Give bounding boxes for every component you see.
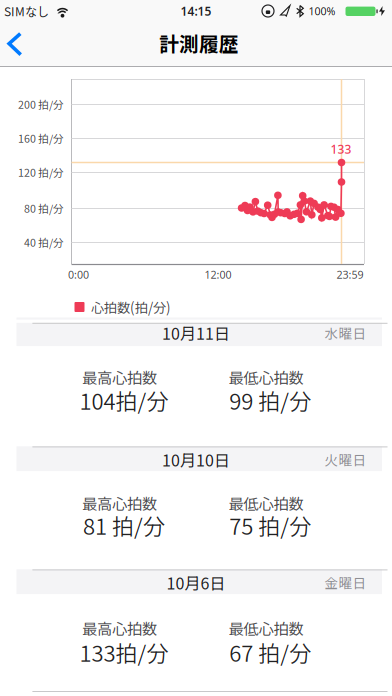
- staticText: 100%: [308, 4, 335, 18]
- staticText: 81 拍/分: [83, 509, 165, 541]
- staticText: 最低心拍数: [228, 617, 303, 639]
- staticText: 99 拍/分: [229, 384, 311, 416]
- button[interactable]: 最高心拍数: [0, 0, 392, 696]
- staticText: 133拍/分: [79, 636, 168, 668]
- staticText: 14:15: [180, 3, 211, 19]
- staticText: 最低心拍数: [228, 366, 303, 388]
- staticText: 23:59: [336, 267, 363, 282]
- staticText: 104拍/分: [79, 384, 168, 416]
- staticText: 金曜日: [324, 573, 366, 592]
- staticText: 水曜日: [324, 323, 366, 343]
- staticText: SIMなし: [4, 2, 49, 20]
- staticText: 最高心拍数: [82, 492, 157, 514]
- staticText: 計測履歴: [159, 29, 239, 57]
- staticText: 67 拍/分: [229, 636, 311, 668]
- staticText: 心拍数(拍/分): [91, 297, 171, 317]
- staticText: 最高心拍数: [82, 617, 157, 639]
- staticText: 最低心拍数: [228, 492, 303, 514]
- staticText: 10月11日: [162, 321, 230, 344]
- staticText: 40 拍/分: [24, 234, 64, 250]
- staticText: 160 拍/分: [18, 130, 64, 146]
- staticText: 10月6日: [166, 571, 225, 594]
- staticText: 火曜日: [324, 450, 366, 469]
- button[interactable]: [8, 32, 23, 56]
- button[interactable]: 最高心拍数: [0, 0, 392, 696]
- button[interactable]: 最高心拍数: [0, 0, 392, 696]
- staticText: 133: [330, 141, 351, 157]
- staticText: 0:00: [68, 267, 89, 282]
- staticText: 10月10日: [162, 448, 230, 471]
- staticText: 80 拍/分: [24, 200, 64, 216]
- staticText: 200 拍/分: [18, 96, 64, 112]
- staticText: 12:00: [204, 267, 231, 282]
- staticText: 120 拍/分: [18, 164, 64, 180]
- staticText: 75 拍/分: [229, 509, 311, 541]
- staticText: 最高心拍数: [82, 366, 157, 388]
